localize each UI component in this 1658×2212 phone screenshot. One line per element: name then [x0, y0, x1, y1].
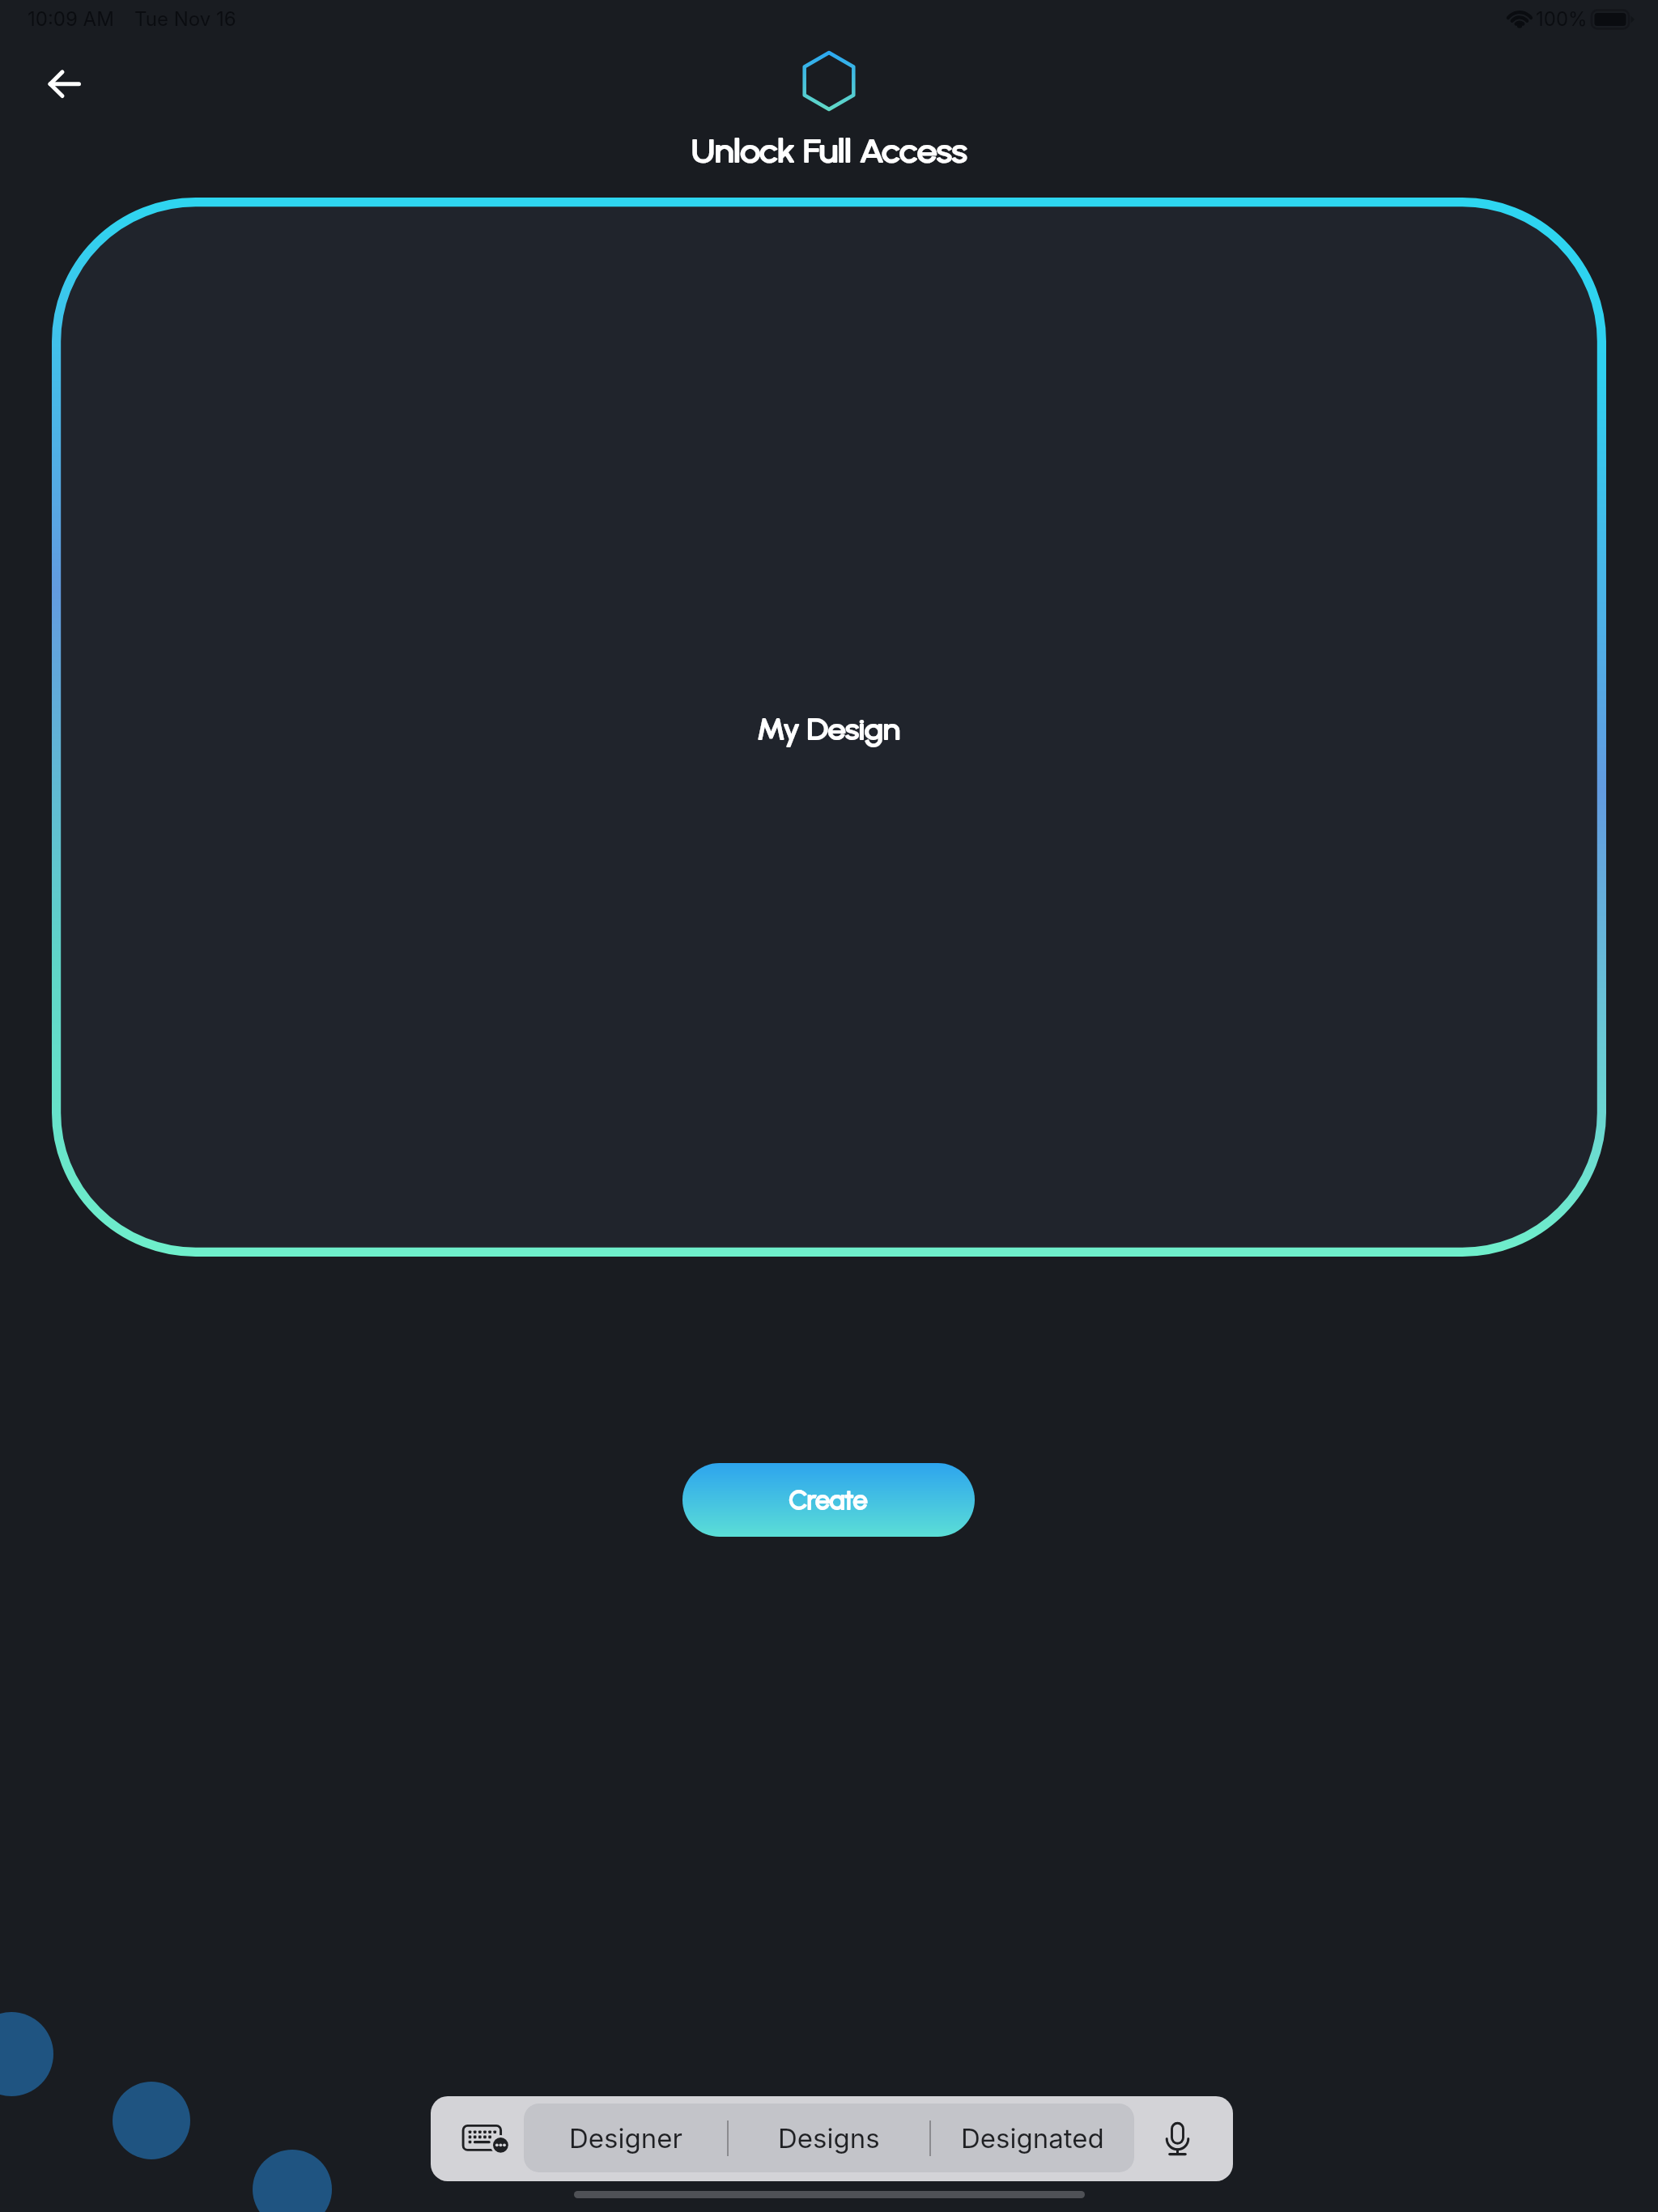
staticText: Create — [789, 1484, 868, 1516]
staticText: Unlock Full Access — [691, 132, 967, 170]
staticText: Designated — [961, 2122, 1104, 2155]
staticText: Unlock Full Access — [691, 132, 967, 170]
button[interactable]: Back — [29, 55, 87, 113]
staticText: Create — [789, 1484, 868, 1516]
staticText: Designer — [569, 2122, 682, 2155]
button[interactable]: Designs — [729, 2104, 929, 2172]
button[interactable]: Dictation — [1134, 2096, 1233, 2181]
button[interactable]: Switch keyboard — [431, 2096, 524, 2181]
button[interactable]: Designated — [931, 2104, 1134, 2172]
button[interactable]: Create — [682, 1463, 975, 1537]
staticText: 100% — [1536, 7, 1588, 31]
staticText: Designs — [778, 2122, 880, 2155]
button[interactable]: Designer — [524, 2104, 727, 2172]
staticText: My Design — [757, 712, 901, 747]
staticText: Tue Nov 16 — [134, 7, 236, 31]
staticText: 10:09 AM — [28, 7, 114, 31]
staticText: My Design — [757, 712, 901, 747]
